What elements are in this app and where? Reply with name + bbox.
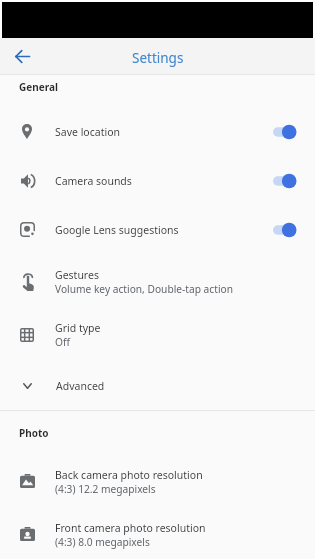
staticText: Back camera photo resolution — [55, 468, 203, 482]
button[interactable]: Back camera photo resolution — [0, 459, 315, 505]
staticText: Camera sounds — [55, 174, 273, 188]
button[interactable]: Advanced — [0, 370, 315, 402]
staticText: Gestures — [55, 268, 99, 282]
button[interactable]: Camera sounds — [0, 156, 315, 205]
staticText: Volume key action, Double-tap action — [55, 282, 233, 296]
staticText: (4:3) 8.0 megapixels — [55, 535, 150, 549]
button[interactable]: Save location — [0, 107, 315, 156]
staticText: Front camera photo resolution — [55, 521, 206, 535]
staticText: Off — [55, 335, 70, 349]
button[interactable]: Gestures — [0, 259, 315, 305]
staticText: Advanced — [56, 379, 105, 393]
staticText: Save location — [55, 125, 273, 139]
staticText: Grid type — [55, 321, 101, 335]
staticText: Settings — [132, 49, 184, 67]
staticText: General — [19, 80, 58, 94]
button[interactable]: Grid type — [0, 312, 315, 358]
button[interactable]: Google Lens suggestions — [0, 205, 315, 254]
button[interactable]: Front camera photo resolution — [0, 512, 315, 558]
staticText: Photo — [19, 426, 49, 440]
button[interactable]: Back — [7, 41, 37, 71]
staticText: (4:3) 12.2 megapixels — [55, 482, 156, 496]
staticText: Google Lens suggestions — [55, 223, 273, 237]
